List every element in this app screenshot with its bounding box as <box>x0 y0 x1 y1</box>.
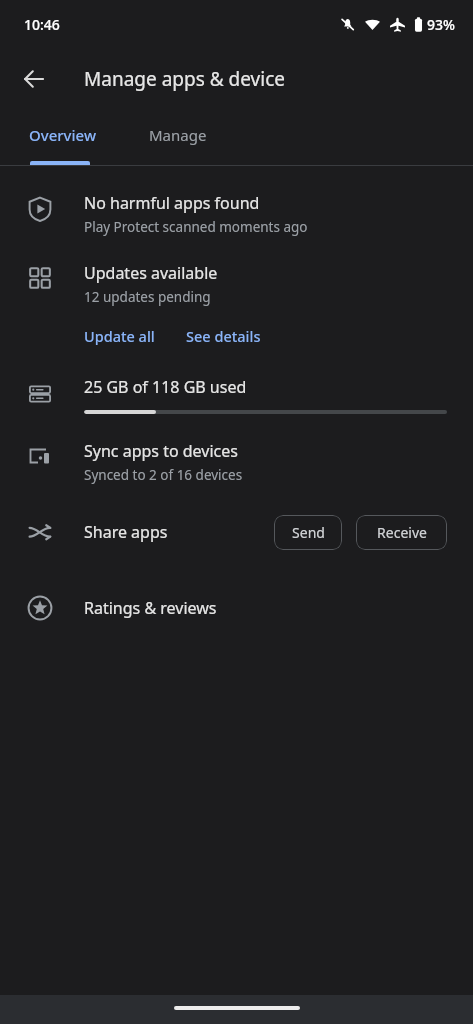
button[interactable]: 25 GB of 118 GB used <box>0 376 473 414</box>
button[interactable]: No harmful apps found <box>0 192 473 236</box>
staticText: Receive <box>377 523 427 542</box>
staticText: See details <box>186 326 261 346</box>
button[interactable]: Back <box>10 55 58 103</box>
button[interactable]: Update all <box>84 322 155 350</box>
staticText: Ratings & reviews <box>84 597 217 619</box>
staticText: Sync apps to devices <box>84 440 238 462</box>
button[interactable]: Updates available <box>0 262 473 306</box>
button[interactable]: Ratings & reviews <box>0 580 473 636</box>
staticText: Play Protect scanned moments ago <box>84 218 308 236</box>
button[interactable]: See details <box>186 322 261 350</box>
staticText: Manage apps & device <box>84 66 285 92</box>
staticText: Update all <box>84 326 155 346</box>
staticText: 12 updates pending <box>84 288 211 306</box>
staticText: Updates available <box>84 262 218 284</box>
button[interactable]: Send <box>274 515 342 550</box>
staticText: Share apps <box>84 521 168 543</box>
staticText: Send <box>292 523 325 542</box>
staticText: 10:46 <box>24 15 60 34</box>
staticText: 25 GB of 118 GB used <box>84 376 247 398</box>
staticText: Synced to 2 of 16 devices <box>84 466 243 484</box>
staticText: 93% <box>427 15 455 34</box>
staticText: No harmful apps found <box>84 192 260 214</box>
staticText: Manage <box>149 125 207 145</box>
button[interactable]: Overview <box>0 110 125 165</box>
button[interactable]: Receive <box>356 515 447 550</box>
staticText: Overview <box>29 125 96 145</box>
button[interactable]: Manage <box>125 110 231 165</box>
button[interactable]: Sync apps to devices <box>0 440 473 484</box>
